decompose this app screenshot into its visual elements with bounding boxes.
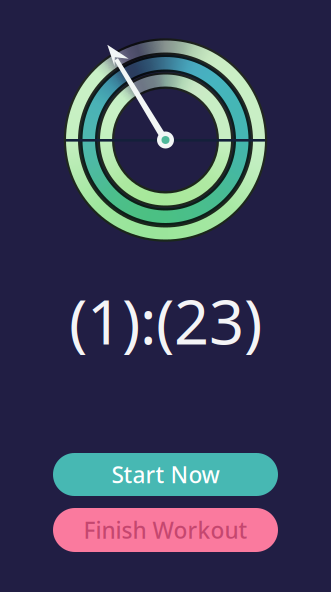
staticText: Finish Workout	[83, 515, 247, 545]
button[interactable]: Finish Workout	[53, 508, 278, 552]
staticText: (1):(23)	[69, 280, 262, 361]
button[interactable]: Start Now	[53, 453, 278, 496]
staticText: Start Now	[111, 459, 219, 489]
